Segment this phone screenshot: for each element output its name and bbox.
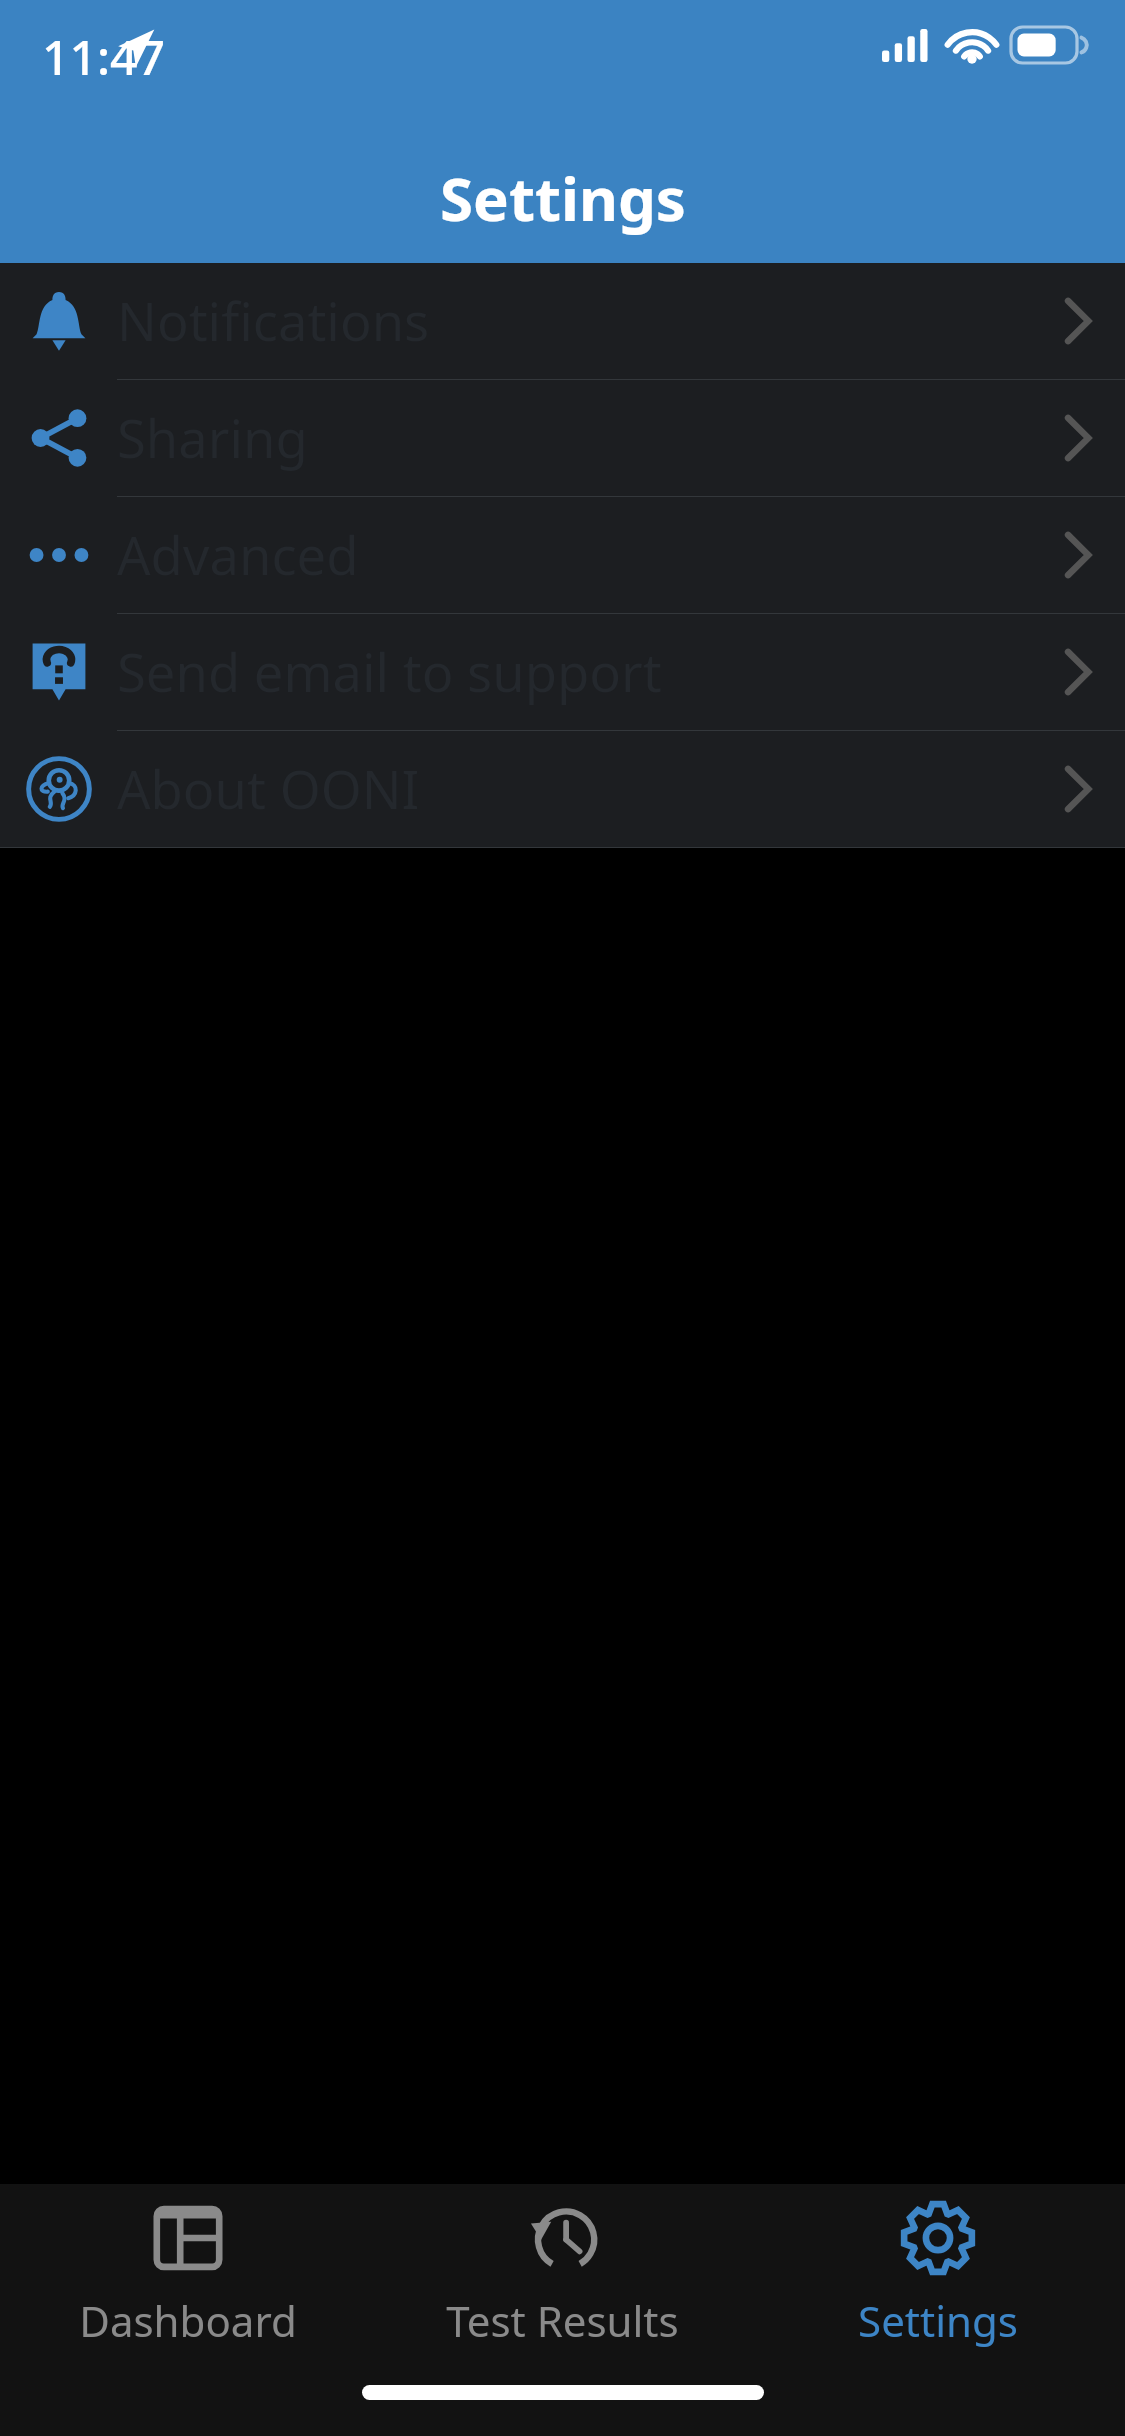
staticText: Settings [440,157,686,239]
staticText: Test Results [446,2292,679,2349]
button[interactable]: Test Results [375,2184,750,2352]
button[interactable]: Send email to support [0,614,1125,730]
staticText: Settings [858,2292,1018,2349]
button[interactable]: Dashboard [0,2184,375,2352]
button[interactable]: Sharing [0,380,1125,496]
button[interactable]: About OONI [0,731,1125,847]
staticText: Dashboard [79,2292,297,2349]
button[interactable]: Advanced [0,497,1125,613]
button[interactable]: Settings [750,2184,1125,2352]
staticText: Send email to support [117,636,1029,708]
button[interactable]: Notifications [0,263,1125,379]
staticText: 11:47 [42,24,165,89]
